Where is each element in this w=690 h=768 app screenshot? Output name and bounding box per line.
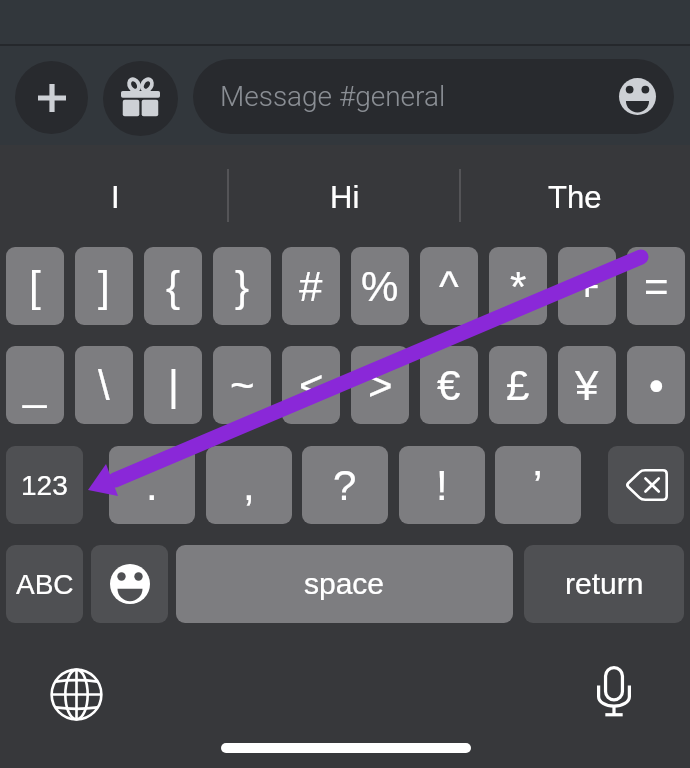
button[interactable]: Change keyboard language (48, 666, 105, 723)
staticText: The (548, 180, 602, 215)
button[interactable]: Message #general (193, 59, 674, 134)
staticText: ~ (230, 362, 255, 409)
button[interactable]: _ (6, 346, 64, 424)
staticText: ABC (16, 569, 74, 600)
button[interactable]: | (144, 346, 202, 424)
staticText: Hi (330, 180, 360, 215)
button[interactable]: Backspace (608, 446, 684, 524)
button[interactable]: < (282, 346, 340, 424)
staticText: ’ (533, 462, 543, 509)
button[interactable]: The (460, 147, 690, 247)
staticText: = (644, 263, 669, 310)
button[interactable]: \ (75, 346, 133, 424)
button[interactable]: Send a gift (103, 61, 178, 136)
staticText: ? (333, 462, 357, 509)
staticText: € (437, 362, 461, 409)
staticText: ] (98, 263, 110, 310)
button[interactable]: return (524, 545, 684, 623)
button[interactable]: ! (399, 446, 485, 524)
staticText: # (299, 263, 323, 310)
button[interactable]: ABC (6, 545, 83, 623)
staticText: | (168, 362, 179, 409)
button[interactable]: Dictate (589, 667, 639, 717)
staticText: space (304, 567, 385, 601)
button[interactable]: * (489, 247, 547, 325)
staticText: < (299, 362, 324, 409)
staticText: . (146, 462, 158, 509)
button[interactable]: ’ (495, 446, 581, 524)
button[interactable]: £ (489, 346, 547, 424)
button[interactable]: Emoji (91, 545, 168, 623)
staticText: , (243, 462, 255, 509)
staticText: { (166, 263, 181, 310)
button[interactable]: # (282, 247, 340, 325)
button[interactable]: Add attachment (15, 61, 88, 134)
staticText: } (235, 263, 250, 310)
button[interactable]: space (176, 545, 513, 623)
button[interactable]: { (144, 247, 202, 325)
staticText: • (649, 362, 664, 409)
staticText: * (510, 263, 527, 310)
staticText: Message #general (220, 80, 446, 113)
staticText: > (368, 362, 393, 409)
button[interactable]: > (351, 346, 409, 424)
button[interactable]: ? (302, 446, 388, 524)
button[interactable]: I (0, 147, 230, 247)
button[interactable]: ~ (213, 346, 271, 424)
staticText: £ (506, 362, 530, 409)
button[interactable]: • (627, 346, 685, 424)
button[interactable]: + (558, 247, 616, 325)
button[interactable]: € (420, 346, 478, 424)
button[interactable]: , (206, 446, 292, 524)
staticText: \ (98, 362, 110, 409)
staticText: [ (29, 263, 41, 310)
staticText: return (565, 567, 644, 601)
staticText: I (111, 180, 120, 215)
button[interactable]: } (213, 247, 271, 325)
staticText: % (361, 263, 399, 310)
staticText: 123 (21, 470, 68, 501)
staticText: ! (436, 462, 448, 509)
button[interactable]: % (351, 247, 409, 325)
button[interactable]: Emoji picker (619, 78, 656, 115)
button[interactable]: Hi (230, 147, 460, 247)
staticText: ^ (439, 263, 459, 310)
staticText: ¥ (575, 362, 599, 409)
button[interactable]: ^ (420, 247, 478, 325)
button[interactable]: . (109, 446, 195, 524)
staticText: + (575, 263, 600, 310)
button[interactable]: [ (6, 247, 64, 325)
staticText: _ (23, 362, 47, 409)
button[interactable]: ] (75, 247, 133, 325)
button[interactable]: ¥ (558, 346, 616, 424)
button[interactable]: 123 (6, 446, 83, 524)
button[interactable]: = (627, 247, 685, 325)
